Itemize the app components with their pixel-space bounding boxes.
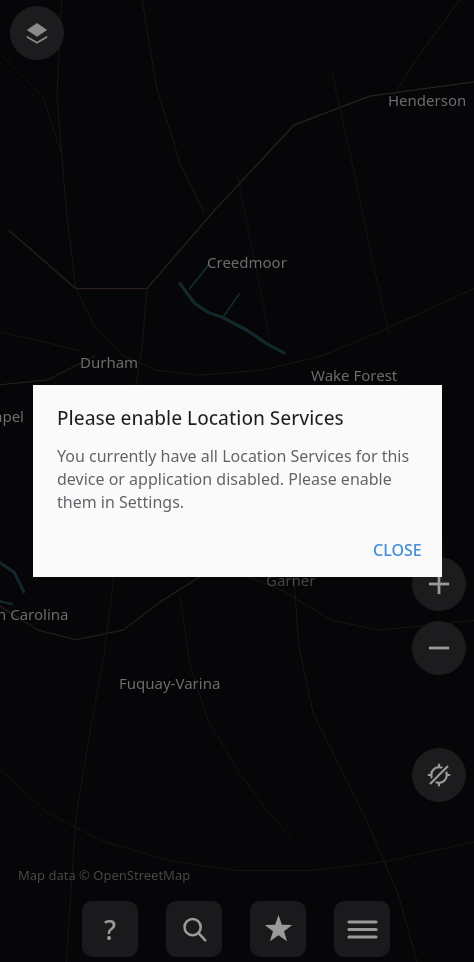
button[interactable]: Search (166, 901, 222, 957)
button[interactable]: Zoom out (412, 621, 466, 675)
button[interactable]: Menu (334, 901, 390, 957)
staticText: CLOSE (373, 539, 422, 561)
button[interactable]: CLOSE (353, 527, 442, 573)
staticText: h Carolina (0, 604, 69, 624)
staticText: Wake Forest (311, 365, 398, 385)
staticText: Henderson (388, 90, 467, 110)
staticText: apel (0, 406, 24, 426)
button[interactable]: Favorites (250, 901, 306, 957)
staticText: Map data © OpenStreetMap (18, 866, 191, 884)
staticText: Please enable Location Services (57, 405, 344, 431)
staticText: Garner (266, 570, 316, 590)
staticText: Durham (80, 352, 139, 372)
staticText: ? (104, 911, 117, 948)
button[interactable]: Zoom in (412, 557, 466, 611)
staticText: You currently have all Location Services… (57, 445, 420, 513)
staticText: Fuquay-Varina (119, 673, 221, 693)
button[interactable]: Layers (10, 6, 64, 60)
staticText: Creedmoor (207, 252, 287, 272)
button[interactable]: Location off (412, 748, 466, 802)
button[interactable]: Help (82, 901, 138, 957)
